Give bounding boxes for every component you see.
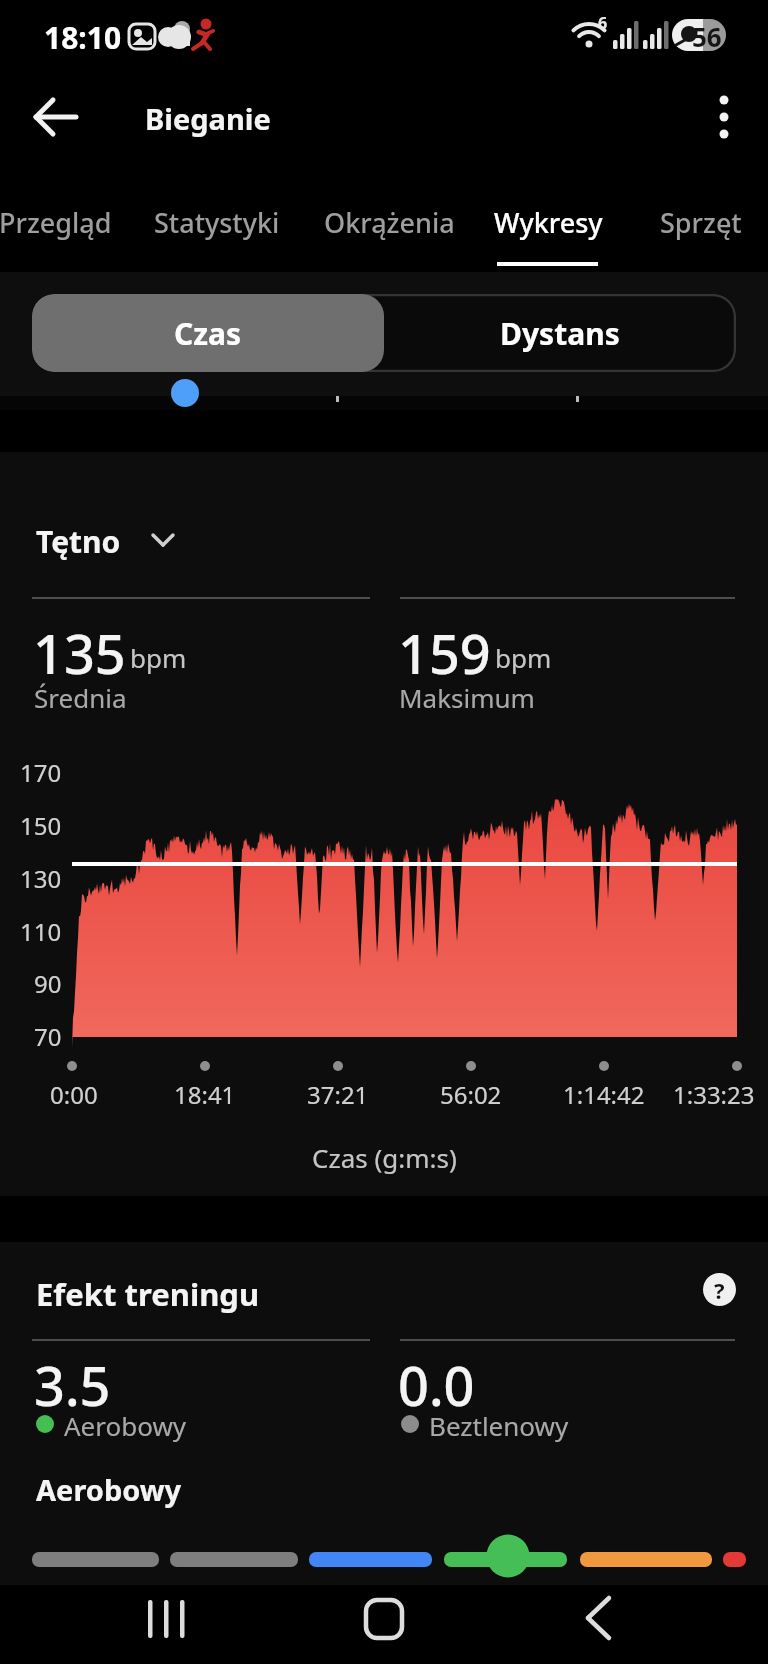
button[interactable]: Statystyki (0, 0, 160, 37)
staticText: bpm (130, 640, 187, 675)
staticText: 37:21 (307, 1078, 369, 1111)
staticText: Dystans (500, 313, 620, 354)
staticText: ? (714, 1275, 725, 1305)
button[interactable] (150, 530, 180, 550)
staticText: Sprzęt (660, 204, 742, 241)
staticText: 6 (598, 12, 608, 34)
staticText: 56:02 (440, 1078, 502, 1111)
staticText: Czas (g:m:s) (312, 1140, 457, 1175)
staticText: 1:33:23 (673, 1078, 755, 1111)
staticText: 18:41 (174, 1078, 236, 1111)
staticText: bpm (495, 640, 552, 675)
staticText: Efekt treningu (36, 1273, 260, 1315)
button[interactable]: Dystans (384, 294, 736, 372)
button[interactable]: ? (703, 1273, 736, 1306)
staticText: Beztlenowy (429, 1408, 569, 1443)
staticText: 135 (33, 616, 126, 690)
staticText: 130 (20, 862, 62, 895)
staticText: 70 (34, 1020, 62, 1053)
button[interactable] (336, 1585, 432, 1655)
button[interactable]: Wykresy (0, 0, 160, 37)
button[interactable]: Okrążenia (0, 0, 160, 37)
staticText: Okrążenia (324, 204, 455, 241)
button[interactable]: Przegląd (0, 0, 160, 37)
staticText: Statystyki (154, 204, 280, 241)
button[interactable]: Czas (32, 294, 384, 372)
staticText: Maksimum (399, 680, 535, 715)
staticText: 0:00 (50, 1078, 98, 1111)
staticText: Przegląd (0, 204, 112, 241)
staticText: Średnia (34, 680, 127, 715)
staticText: 159 (398, 616, 491, 690)
staticText: 56 (692, 19, 722, 54)
staticText: Czas (174, 313, 242, 354)
staticText: 90 (34, 967, 62, 1000)
staticText: Tętno (36, 521, 121, 562)
button[interactable] (698, 90, 750, 144)
button[interactable]: Sprzęt (0, 0, 160, 37)
staticText: 150 (20, 809, 62, 842)
staticText: 0.0 (398, 1348, 475, 1422)
staticText: Bieganie (145, 99, 271, 138)
staticText: Wykresy (494, 204, 603, 241)
staticText: 170 (20, 756, 62, 789)
button[interactable] (24, 84, 90, 150)
staticText: Aerobowy (64, 1408, 187, 1443)
button[interactable] (550, 1585, 646, 1655)
staticText: Aerobowy (36, 1470, 182, 1509)
staticText: 1:14:42 (563, 1078, 645, 1111)
staticText: 110 (20, 915, 62, 948)
button[interactable] (120, 1585, 216, 1655)
staticText: 18:10 (44, 17, 122, 58)
staticText: 3.5 (34, 1348, 111, 1422)
